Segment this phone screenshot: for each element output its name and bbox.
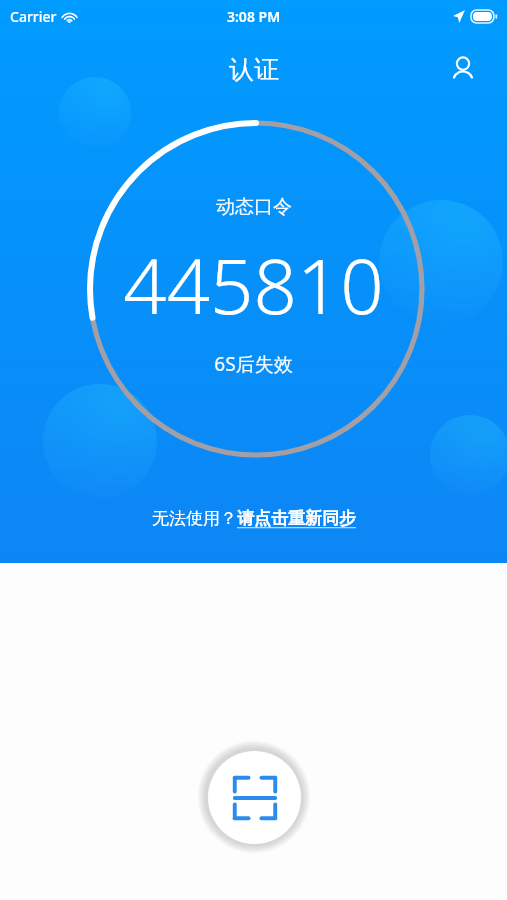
button[interactable]: 无法使用？请点击重新同步 bbox=[140, 504, 368, 533]
button[interactable]: Scan QR code bbox=[208, 751, 301, 844]
staticText: 6S后失效 bbox=[214, 351, 293, 377]
staticText: 认证 bbox=[229, 54, 279, 85]
staticText: 445810 bbox=[123, 233, 384, 337]
staticText: 动态口令 bbox=[216, 195, 292, 219]
button[interactable]: Account bbox=[441, 47, 485, 91]
staticText: 3:08 PM bbox=[227, 7, 281, 26]
staticText: Carrier bbox=[10, 7, 57, 26]
staticText: 无法使用？请点击重新同步 bbox=[152, 508, 356, 529]
